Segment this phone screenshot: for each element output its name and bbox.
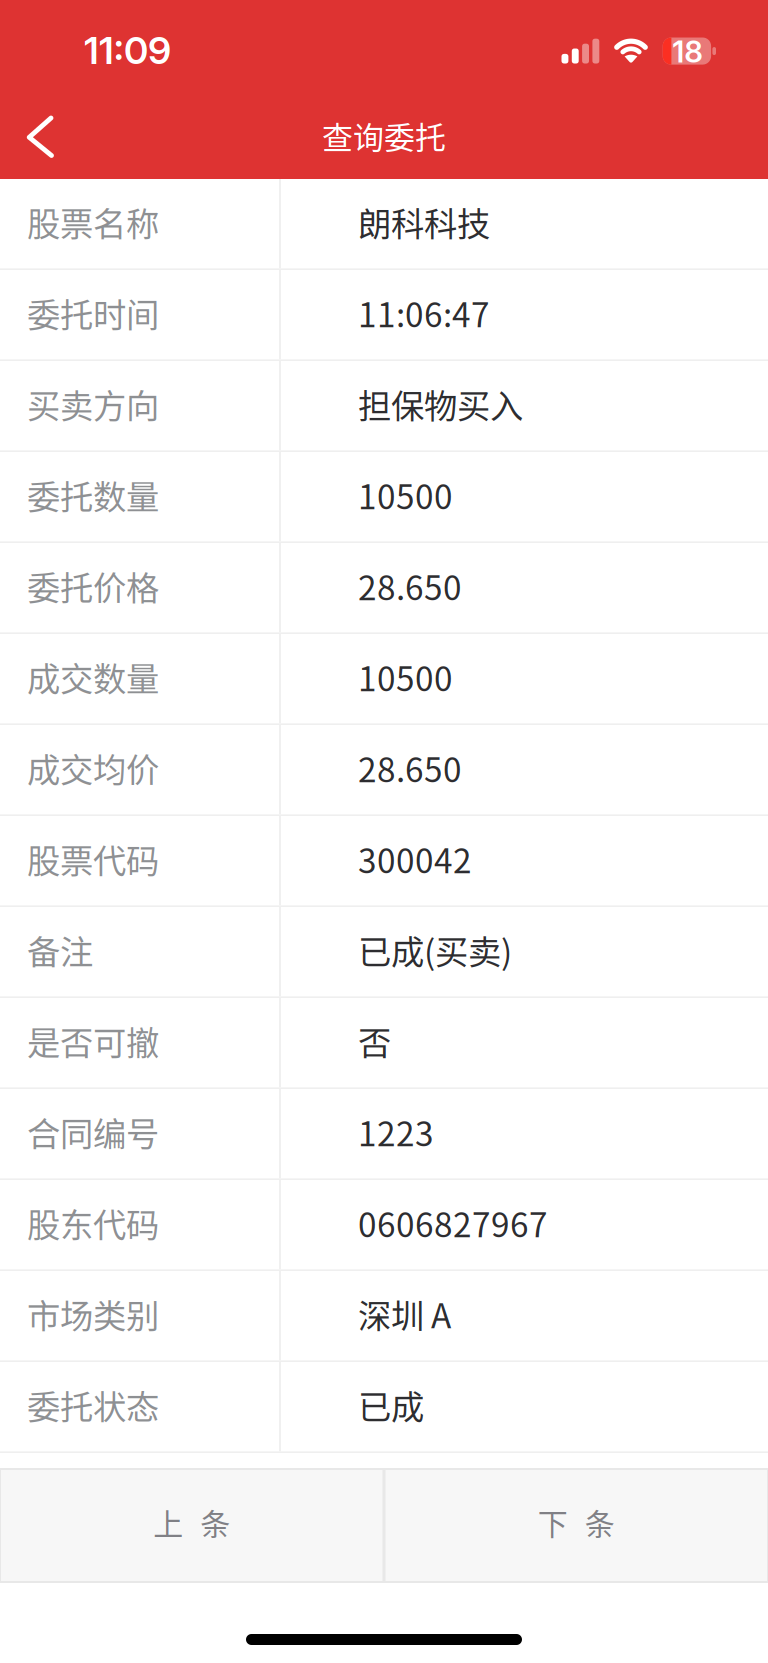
staticText: 委托状态 [27,1381,159,1429]
staticText: 买卖方向 [27,380,159,428]
staticText: 1223 [358,1108,434,1156]
staticText: 担保物买入 [358,380,523,428]
staticText: 委托数量 [27,471,159,519]
staticText: 10500 [358,653,453,701]
staticText: 合同编号 [27,1108,159,1156]
button[interactable]: 上条 [0,1469,383,1582]
staticText: 300042 [358,835,472,883]
staticText: 上 [153,1500,183,1544]
staticText: 委托时间 [27,289,159,337]
staticText: 市场类别 [27,1290,159,1338]
staticText: 股东代码 [27,1199,159,1247]
staticText: 条 [585,1500,615,1544]
staticText: 查询委托 [322,113,446,158]
staticText: 深圳 A [358,1290,451,1338]
staticText: 0606827967 [358,1199,548,1247]
staticText: 否 [358,1017,391,1065]
staticText: 28.650 [358,744,462,792]
staticText: 11:09 [84,27,171,73]
staticText: 朗科科技 [358,198,490,246]
staticText: 下 [538,1500,568,1544]
staticText: 股票名称 [27,198,159,246]
button[interactable]: 返回 [0,100,96,179]
button[interactable]: 下条 [384,1469,768,1582]
staticText: 股票代码 [27,835,159,883]
staticText: 10500 [358,471,453,519]
staticText: 28.650 [358,562,462,610]
staticText: 成交数量 [27,653,159,701]
staticText: 成交均价 [27,744,159,792]
staticText: 已成(买卖) [358,926,512,974]
staticText: 条 [200,1500,230,1544]
staticText: 已成 [358,1381,424,1429]
staticText: 委托价格 [27,562,159,610]
staticText: 是否可撤 [27,1017,159,1065]
staticText: 11:06:47 [358,289,490,337]
staticText: 18 [672,33,703,70]
staticText: 备注 [27,926,93,974]
